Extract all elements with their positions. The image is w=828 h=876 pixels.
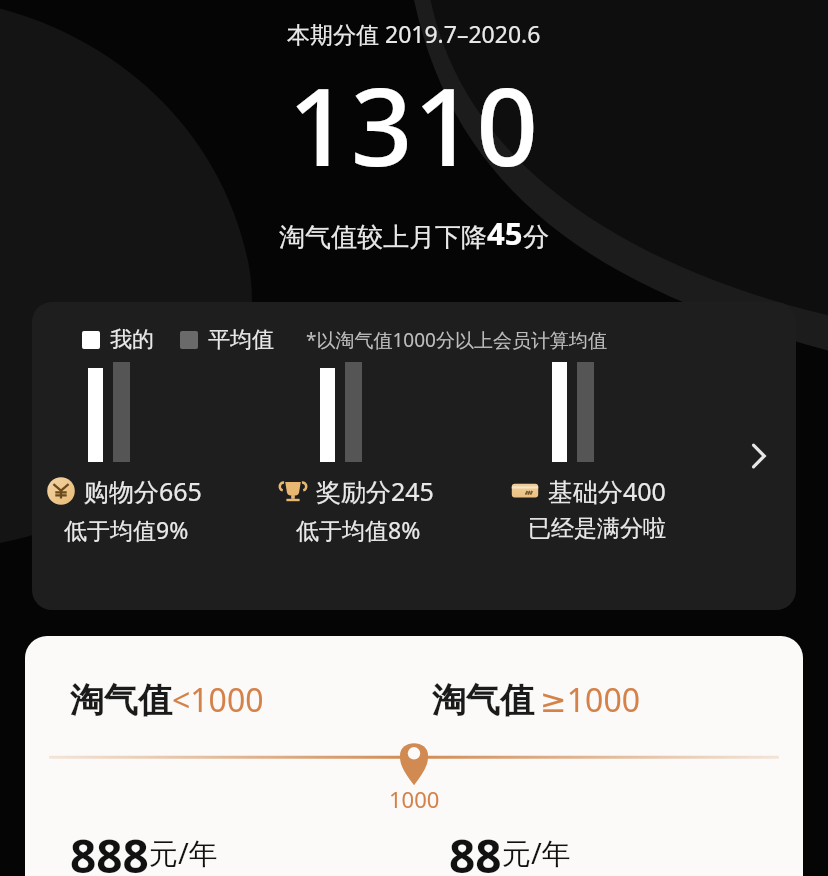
staticText: 奖励分245 xyxy=(316,474,434,508)
staticText: 淘气值 xyxy=(432,679,534,722)
staticText: 888 xyxy=(70,824,149,876)
staticText: 平均值 xyxy=(208,326,274,354)
staticText: 本期分值 2019.7–2020.6 xyxy=(287,18,541,49)
staticText: 88 xyxy=(449,824,502,876)
staticText: 1310 xyxy=(288,51,540,198)
staticText: 1000 xyxy=(389,784,440,814)
staticText: 已经是满分啦 xyxy=(528,514,666,543)
staticText: 元/年 xyxy=(502,833,571,873)
staticText: 淘气值较上月下降 xyxy=(279,221,487,254)
button[interactable]: More details xyxy=(734,432,782,480)
button[interactable]: 我的 xyxy=(32,302,796,610)
staticText: 低于均值9% xyxy=(64,514,189,545)
staticText: 元/年 xyxy=(149,833,218,873)
staticText: 低于均值8% xyxy=(296,514,421,545)
staticText: 分 xyxy=(523,221,549,254)
staticText: ≥1000 xyxy=(540,678,641,722)
staticText: 淘气值 xyxy=(70,679,172,722)
staticText: <1000 xyxy=(172,678,264,722)
staticText: 我的 xyxy=(110,326,154,354)
staticText: 基础分400 xyxy=(548,474,666,508)
button[interactable]: 淘气值 xyxy=(25,636,803,876)
staticText: 45 xyxy=(487,212,523,254)
staticText: 购物分665 xyxy=(84,474,202,508)
staticText: *以淘气值1000分以上会员计算均值 xyxy=(306,327,607,353)
